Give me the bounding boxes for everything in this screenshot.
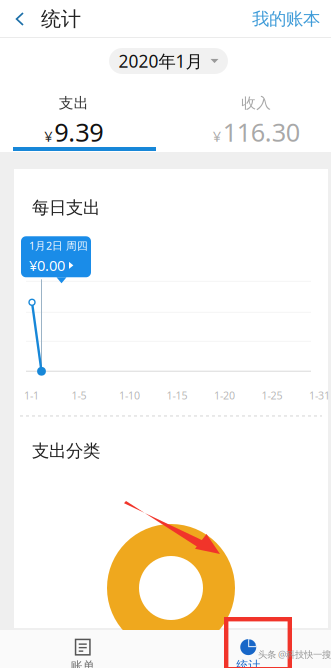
staticText: 支出分类 bbox=[32, 440, 100, 462]
staticText: 1-15 bbox=[166, 388, 187, 402]
staticText: 1-1 bbox=[24, 388, 39, 402]
staticText: 9.39 bbox=[54, 115, 103, 149]
staticText: ¥0.00 bbox=[29, 256, 65, 275]
staticText: 1-31 bbox=[309, 388, 330, 402]
button[interactable]: 我的账本 bbox=[252, 0, 331, 38]
staticText: 支出 bbox=[59, 94, 89, 112]
staticText: 1月2日 周四 bbox=[29, 238, 88, 253]
staticText: 收入 bbox=[241, 94, 271, 112]
staticText: 1-20 bbox=[214, 388, 235, 402]
staticText: 统计 bbox=[236, 658, 260, 668]
staticText: 1-10 bbox=[119, 388, 140, 402]
button[interactable]: 账单 bbox=[0, 625, 165, 668]
staticText: ¥ bbox=[44, 126, 52, 146]
staticText: 每日支出 bbox=[32, 197, 100, 218]
staticText: ¥ bbox=[213, 126, 221, 146]
button[interactable]: 统计 bbox=[0, 0, 91, 38]
staticText: 116.30 bbox=[223, 115, 300, 149]
button[interactable]: 2020年1月 bbox=[106, 46, 225, 72]
staticText: 2020年1月 bbox=[118, 49, 202, 72]
staticText: 我的账本 bbox=[252, 8, 320, 30]
staticText: 统计 bbox=[41, 7, 81, 31]
staticText: 账单 bbox=[71, 659, 95, 668]
staticText: 1-5 bbox=[71, 388, 86, 402]
staticText: 1-25 bbox=[261, 388, 282, 402]
button[interactable]: 统计 bbox=[165, 625, 331, 668]
staticText: 头条 @科技快一搜 bbox=[258, 648, 331, 660]
